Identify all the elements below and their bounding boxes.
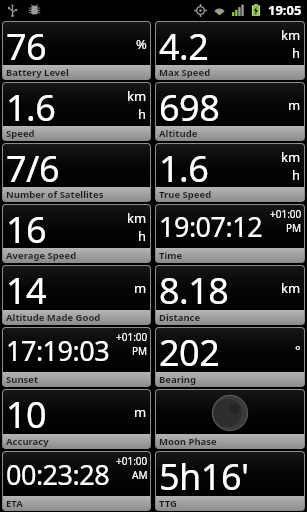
- staticText: m: [288, 96, 301, 114]
- staticText: 19:05: [268, 1, 302, 19]
- staticText: Accuracy: [6, 435, 49, 448]
- staticText: m: [134, 403, 147, 421]
- staticText: Max Speed: [159, 66, 211, 79]
- button[interactable]: 1.6: [156, 144, 304, 201]
- button[interactable]: 202: [156, 328, 304, 386]
- staticText: 698: [159, 83, 220, 126]
- staticText: 10: [6, 390, 47, 434]
- staticText: 16: [6, 205, 47, 248]
- button[interactable]: 16: [3, 205, 150, 262]
- staticText: Moon Phase: [159, 435, 217, 448]
- button[interactable]: 10: [3, 390, 150, 448]
- staticText: Altitude Made Good: [6, 311, 101, 324]
- staticText: +01:00: [116, 330, 148, 344]
- button[interactable]: 698: [156, 83, 304, 140]
- staticText: h: [138, 105, 147, 123]
- button[interactable]: 17:19:03: [3, 328, 150, 386]
- staticText: m: [134, 279, 147, 297]
- button[interactable]: 4.2: [156, 22, 304, 79]
- staticText: 5h16': [159, 452, 249, 496]
- staticText: km: [127, 87, 147, 105]
- staticText: h: [292, 166, 301, 184]
- staticText: 1.6: [159, 144, 209, 187]
- staticText: km: [127, 209, 147, 227]
- button[interactable]: 00:23:28: [3, 452, 150, 510]
- staticText: Number of Satellites: [6, 188, 104, 201]
- staticText: h: [292, 44, 301, 62]
- staticText: +01:00: [270, 207, 302, 221]
- staticText: AM: [132, 468, 148, 482]
- staticText: 17:19:03: [6, 332, 110, 369]
- staticText: +01:00: [116, 454, 148, 468]
- staticText: Distance: [159, 311, 201, 324]
- button[interactable]: 76: [3, 22, 150, 79]
- staticText: TTG: [159, 497, 177, 510]
- staticText: 76: [6, 22, 47, 65]
- staticText: PM: [132, 344, 148, 358]
- staticText: PM: [286, 221, 302, 235]
- button[interactable]: 5h16': [156, 452, 304, 510]
- button[interactable]: 14: [3, 266, 150, 324]
- staticText: Speed: [6, 127, 35, 140]
- staticText: Bearing: [159, 373, 196, 386]
- staticText: 00:23:28: [6, 456, 110, 493]
- staticText: Battery Level: [6, 66, 69, 79]
- staticText: Time: [159, 249, 183, 262]
- button[interactable]: 7/6: [3, 144, 150, 201]
- staticText: 7/6: [6, 144, 60, 187]
- staticText: %: [136, 35, 147, 53]
- staticText: °: [295, 341, 301, 359]
- staticText: 1.6: [6, 83, 56, 126]
- staticText: km: [281, 148, 301, 166]
- staticText: Sunset: [6, 373, 39, 386]
- button[interactable]: Moon Phase: [156, 390, 304, 448]
- staticText: km: [281, 279, 301, 297]
- button[interactable]: 1.6: [3, 83, 150, 140]
- staticText: True Speed: [159, 188, 212, 201]
- staticText: km: [281, 26, 301, 44]
- staticText: h: [138, 227, 147, 245]
- staticText: 202: [159, 328, 220, 372]
- staticText: Altitude: [159, 127, 198, 140]
- button[interactable]: 19:07:12: [156, 205, 304, 262]
- staticText: 4.2: [159, 22, 209, 65]
- staticText: Average Speed: [6, 249, 77, 262]
- staticText: 8.18: [159, 266, 229, 310]
- staticText: ETA: [6, 497, 23, 510]
- button[interactable]: 8.18: [156, 266, 304, 324]
- staticText: 14: [6, 266, 47, 310]
- staticText: 19:07:12: [159, 208, 263, 245]
